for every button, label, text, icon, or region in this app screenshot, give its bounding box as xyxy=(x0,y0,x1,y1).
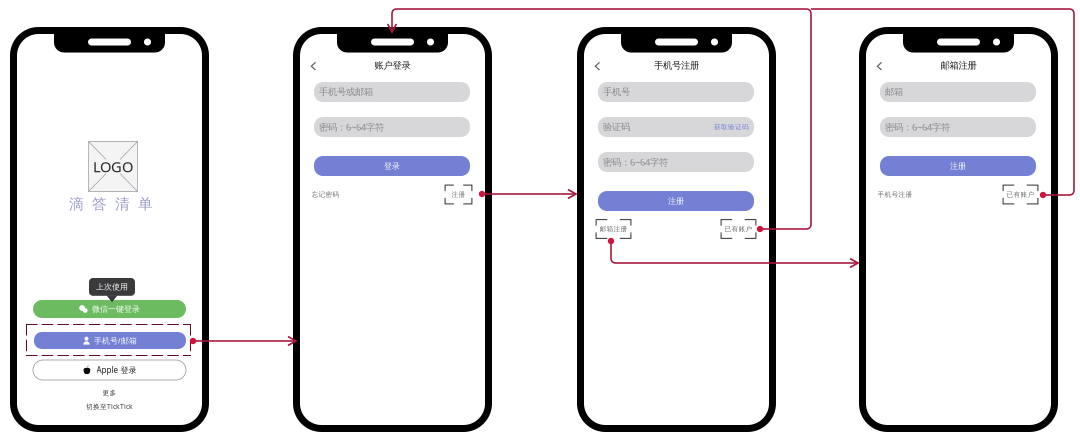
staticText: 微信一键登录 xyxy=(92,304,140,314)
staticText: 手机号注册 xyxy=(877,190,912,199)
staticText: 注册 xyxy=(950,161,966,171)
staticText: 邮箱注册 xyxy=(599,225,627,233)
staticText: 已有账户 xyxy=(1006,190,1034,199)
staticText: 手机号 xyxy=(603,86,630,98)
staticText: 登录 xyxy=(384,161,400,171)
button[interactable]: Back xyxy=(306,57,321,76)
button[interactable]: 微信一键登录 xyxy=(33,300,186,318)
button[interactable]: 更多 xyxy=(102,389,116,397)
staticText: 手机号或邮箱 xyxy=(319,86,373,98)
staticText: 切换至TickTick xyxy=(86,402,133,411)
staticText: 邮箱 xyxy=(885,86,903,98)
button[interactable]: 注册 xyxy=(444,184,472,204)
button[interactable]: Apple 登录 xyxy=(33,360,186,380)
staticText: 账户登录 xyxy=(374,60,410,71)
staticText: 上次使用 xyxy=(96,282,128,292)
staticText: 忘记密码 xyxy=(311,190,339,199)
button[interactable]: 已有账户 xyxy=(720,219,756,239)
button[interactable]: Back xyxy=(872,57,887,76)
button[interactable]: 注册 xyxy=(598,191,754,211)
staticText: 注册 xyxy=(451,190,465,199)
staticText: 已有账户 xyxy=(724,225,752,233)
staticText: 邮箱注册 xyxy=(940,60,976,71)
button[interactable]: Back xyxy=(590,57,605,76)
staticText: 密码：6~64字符 xyxy=(603,156,668,168)
staticText: 密码：6~64字符 xyxy=(885,121,950,133)
button[interactable]: 注册 xyxy=(880,156,1036,176)
staticText: 密码：6~64字符 xyxy=(319,121,384,133)
staticText: 滴 答 清 单 xyxy=(69,195,153,213)
button[interactable]: 邮箱注册 xyxy=(595,219,631,239)
staticText: 验证码 xyxy=(603,121,630,133)
staticText: 更多 xyxy=(102,389,116,397)
button[interactable]: 手机号/邮箱 xyxy=(34,332,186,349)
staticText: Apple 登录 xyxy=(96,365,136,375)
staticText: 注册 xyxy=(668,196,684,206)
button[interactable]: 手机号注册 xyxy=(877,184,912,205)
staticText: LOGO xyxy=(93,157,133,176)
staticText: 手机号注册 xyxy=(654,60,699,71)
staticText: 手机号/邮箱 xyxy=(94,335,137,346)
button[interactable]: 切换至TickTick xyxy=(86,402,133,411)
button[interactable]: 忘记密码 xyxy=(311,184,339,205)
staticText: 获取验证码 xyxy=(714,123,749,131)
button[interactable]: 登录 xyxy=(314,156,470,176)
button[interactable]: 已有账户 xyxy=(1002,184,1038,204)
